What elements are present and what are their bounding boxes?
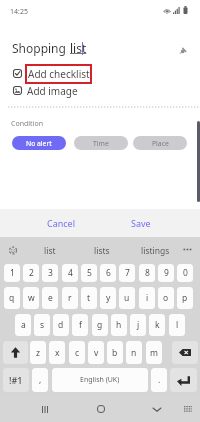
button[interactable]: Enter (170, 368, 197, 392)
staticText: g (97, 319, 103, 331)
staticText: p (182, 292, 188, 304)
staticText: Place (152, 139, 169, 148)
button[interactable]: . (151, 368, 167, 392)
staticText: e (48, 292, 53, 304)
staticText: listings (141, 245, 170, 257)
staticText: Condition (11, 119, 43, 129)
button[interactable]: Save (126, 209, 155, 237)
staticText: 8 (145, 267, 150, 279)
staticText: r (68, 292, 72, 304)
button[interactable]: l (169, 314, 185, 336)
staticText: d (58, 319, 64, 331)
staticText: h (116, 319, 122, 331)
button[interactable]: Shift (3, 341, 28, 364)
staticText: n (131, 347, 137, 359)
button[interactable]: Cancel (41, 209, 82, 237)
staticText: . (158, 374, 161, 386)
button[interactable]: Add image (0, 81, 200, 99)
button[interactable]: d (53, 314, 69, 336)
button[interactable]: Time (74, 136, 128, 150)
button[interactable]: Add checklist (0, 64, 200, 82)
staticText: u (124, 292, 130, 304)
button[interactable]: e (42, 287, 58, 309)
staticText: s (40, 319, 45, 331)
button[interactable]: 6 (100, 264, 116, 282)
staticText: 5 (87, 267, 92, 279)
button[interactable]: v (88, 341, 104, 364)
staticText: , (39, 374, 42, 386)
button[interactable]: s (34, 314, 50, 336)
staticText: y (106, 292, 111, 304)
button[interactable]: 0 (177, 264, 193, 282)
button[interactable]: o (158, 287, 174, 309)
staticText: list (44, 245, 56, 257)
staticText: 2 (29, 267, 34, 279)
button[interactable]: Symbols (3, 368, 29, 392)
button[interactable]: list (30, 238, 70, 263)
button[interactable]: 2 (23, 264, 39, 282)
button[interactable]: h (111, 314, 127, 336)
button[interactable]: f (72, 314, 88, 336)
button[interactable]: No alert (12, 136, 66, 150)
staticText: 6 (106, 267, 111, 279)
button[interactable]: Pin (174, 43, 190, 59)
staticText: 9 (164, 267, 169, 279)
staticText: a (21, 319, 26, 331)
button[interactable]: 8 (139, 264, 155, 282)
button[interactable]: Home (91, 399, 111, 419)
button[interactable]: 1 (4, 264, 20, 282)
button[interactable]: Backspace (172, 341, 198, 364)
staticText: 3 (48, 267, 53, 279)
button[interactable]: Close keyboard (147, 399, 167, 419)
button[interactable]: Place (133, 136, 187, 150)
staticText: t (87, 292, 91, 304)
button[interactable]: r (62, 287, 78, 309)
staticText: No alert (26, 139, 52, 148)
button[interactable]: a (15, 314, 31, 336)
staticText: v (94, 347, 99, 359)
button[interactable]: Recents (35, 399, 55, 419)
button[interactable]: p (177, 287, 193, 309)
staticText: 0 (183, 267, 188, 279)
button[interactable]: lists (82, 238, 122, 263)
button[interactable]: , (32, 368, 48, 392)
button[interactable]: i (139, 287, 155, 309)
button[interactable]: 9 (158, 264, 174, 282)
staticText: !#1 (9, 374, 23, 386)
button[interactable]: t (81, 287, 97, 309)
button[interactable]: m (146, 341, 162, 364)
button[interactable]: 5 (81, 264, 97, 282)
button[interactable]: c (69, 341, 85, 364)
staticText: c (75, 347, 80, 359)
staticText: z (36, 347, 40, 359)
button[interactable]: x (49, 341, 65, 364)
button[interactable]: q (4, 287, 20, 309)
staticText: Shopping (12, 40, 70, 56)
button[interactable]: w (23, 287, 39, 309)
button[interactable]: u (119, 287, 135, 309)
button[interactable]: z (30, 341, 46, 364)
button[interactable]: k (149, 314, 165, 336)
button[interactable]: English (UK) (52, 368, 148, 392)
button[interactable]: 7 (119, 264, 135, 282)
staticText: 14:25 (10, 7, 28, 17)
staticText: k (155, 319, 160, 331)
button[interactable]: 3 (42, 264, 58, 282)
staticText: Time (93, 139, 109, 148)
button[interactable]: b (107, 341, 123, 364)
staticText: English (UK) (80, 375, 120, 385)
staticText: l (176, 319, 179, 331)
button[interactable]: j (130, 314, 146, 336)
button[interactable]: Change keyboard (178, 399, 198, 419)
button[interactable]: n (126, 341, 142, 364)
staticText: i (146, 292, 149, 304)
staticText: Cancel (47, 217, 76, 229)
button[interactable]: g (92, 314, 108, 336)
button[interactable]: 4 (62, 264, 78, 282)
staticText: j (137, 319, 140, 331)
staticText: 1 (10, 267, 15, 279)
button[interactable]: Emoji (4, 241, 22, 259)
button[interactable]: More suggestions (178, 241, 195, 258)
button[interactable]: y (100, 287, 116, 309)
button[interactable]: listings (135, 238, 175, 263)
